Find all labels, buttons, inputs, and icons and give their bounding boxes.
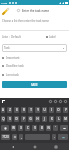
button[interactable]: Back [12, 146, 14, 148]
staticText: K [51, 117, 53, 121]
button[interactable]: Label [46, 35, 69, 39]
staticText: F [23, 117, 25, 121]
button[interactable]: R [21, 107, 26, 113]
staticText: T [30, 108, 32, 112]
button[interactable]: J [42, 116, 47, 122]
staticText: R [23, 108, 25, 112]
button[interactable]: U [42, 107, 47, 113]
staticText: Long task [6, 73, 19, 76]
staticText: H [36, 117, 39, 121]
button[interactable]: P [63, 107, 68, 113]
staticText: 17:38 [1, 1, 8, 4]
button[interactable]: W [11, 125, 16, 131]
button[interactable]: Clipboard [2, 100, 5, 103]
staticText: P [65, 108, 67, 112]
button[interactable]: A [1, 107, 5, 113]
button[interactable]: H [35, 116, 40, 122]
staticText: S [9, 117, 11, 121]
button[interactable]: S [7, 116, 12, 122]
button[interactable]: T [28, 107, 33, 113]
button[interactable]: L [56, 116, 61, 122]
button[interactable]: C [25, 125, 30, 131]
button[interactable]: ' [53, 125, 58, 131]
staticText: Z [9, 108, 11, 112]
staticText: Enter the task name [22, 9, 49, 13]
staticText: X [20, 126, 22, 130]
button[interactable]: Deadline task [2, 64, 69, 67]
button[interactable]: App logo [2, 8, 9, 15]
staticText: . [54, 135, 55, 139]
button[interactable]: K [49, 116, 54, 122]
button[interactable]: O [56, 107, 61, 113]
button[interactable]: Keyboard option [59, 100, 62, 103]
button[interactable]: I [49, 107, 54, 113]
staticText: G [29, 117, 32, 121]
staticText: Deadline task [6, 64, 24, 67]
staticText: O [57, 108, 60, 112]
staticText: J [44, 117, 45, 121]
button[interactable]: X [18, 125, 23, 131]
button[interactable]: Keyboard option [54, 100, 57, 103]
button[interactable]: M [63, 116, 68, 122]
button[interactable]: Task [2, 44, 67, 52]
button[interactable]: G [28, 116, 33, 122]
staticText: Liste : Default [2, 35, 21, 39]
staticText: I [51, 108, 52, 112]
button[interactable]: Important [2, 56, 69, 59]
staticText: ?123 [2, 135, 9, 139]
button[interactable]: F [21, 116, 26, 122]
staticText: Important [6, 56, 20, 59]
staticText: E [16, 108, 18, 112]
button[interactable]: Enter [58, 134, 68, 140]
staticText: Q [2, 117, 5, 121]
button[interactable]: Shift [1, 125, 9, 131]
button[interactable]: Q [1, 116, 5, 122]
staticText: Task [4, 46, 10, 50]
button[interactable]: Emoji [12, 134, 17, 140]
button[interactable]: E [14, 107, 19, 113]
button[interactable]: N [46, 125, 51, 131]
button[interactable]: SAVE [2, 81, 67, 88]
button[interactable]: Checklist [17, 9, 20, 12]
button[interactable]: , [19, 134, 23, 140]
staticText: N [47, 126, 50, 130]
staticText: A [2, 108, 4, 112]
staticText: W [12, 126, 15, 130]
staticText: B [41, 126, 43, 130]
staticText: ' [55, 126, 56, 130]
button[interactable]: Backspace [60, 125, 68, 131]
staticText: D [15, 117, 18, 121]
staticText: V [34, 126, 36, 130]
button[interactable]: Long task [2, 73, 69, 76]
staticText: , [21, 135, 22, 139]
button[interactable]: D [14, 116, 19, 122]
button[interactable]: Keyboard option [49, 100, 52, 103]
button[interactable]: ?123 [1, 134, 10, 140]
button[interactable]: Keyboard option [64, 100, 67, 103]
staticText: SAVE [31, 83, 38, 87]
staticText: C [27, 126, 29, 130]
staticText: Choose a list then enter the task name [2, 19, 49, 23]
staticText: M [64, 117, 67, 121]
staticText: Label [49, 35, 56, 39]
button[interactable]: . [52, 134, 56, 140]
staticText: Y [37, 108, 39, 112]
button[interactable]: Y [35, 107, 40, 113]
button[interactable]: B [39, 125, 44, 131]
staticText: U [43, 108, 46, 112]
button[interactable]: Z [7, 107, 12, 113]
staticText: L [58, 117, 60, 121]
button[interactable]: V [32, 125, 37, 131]
